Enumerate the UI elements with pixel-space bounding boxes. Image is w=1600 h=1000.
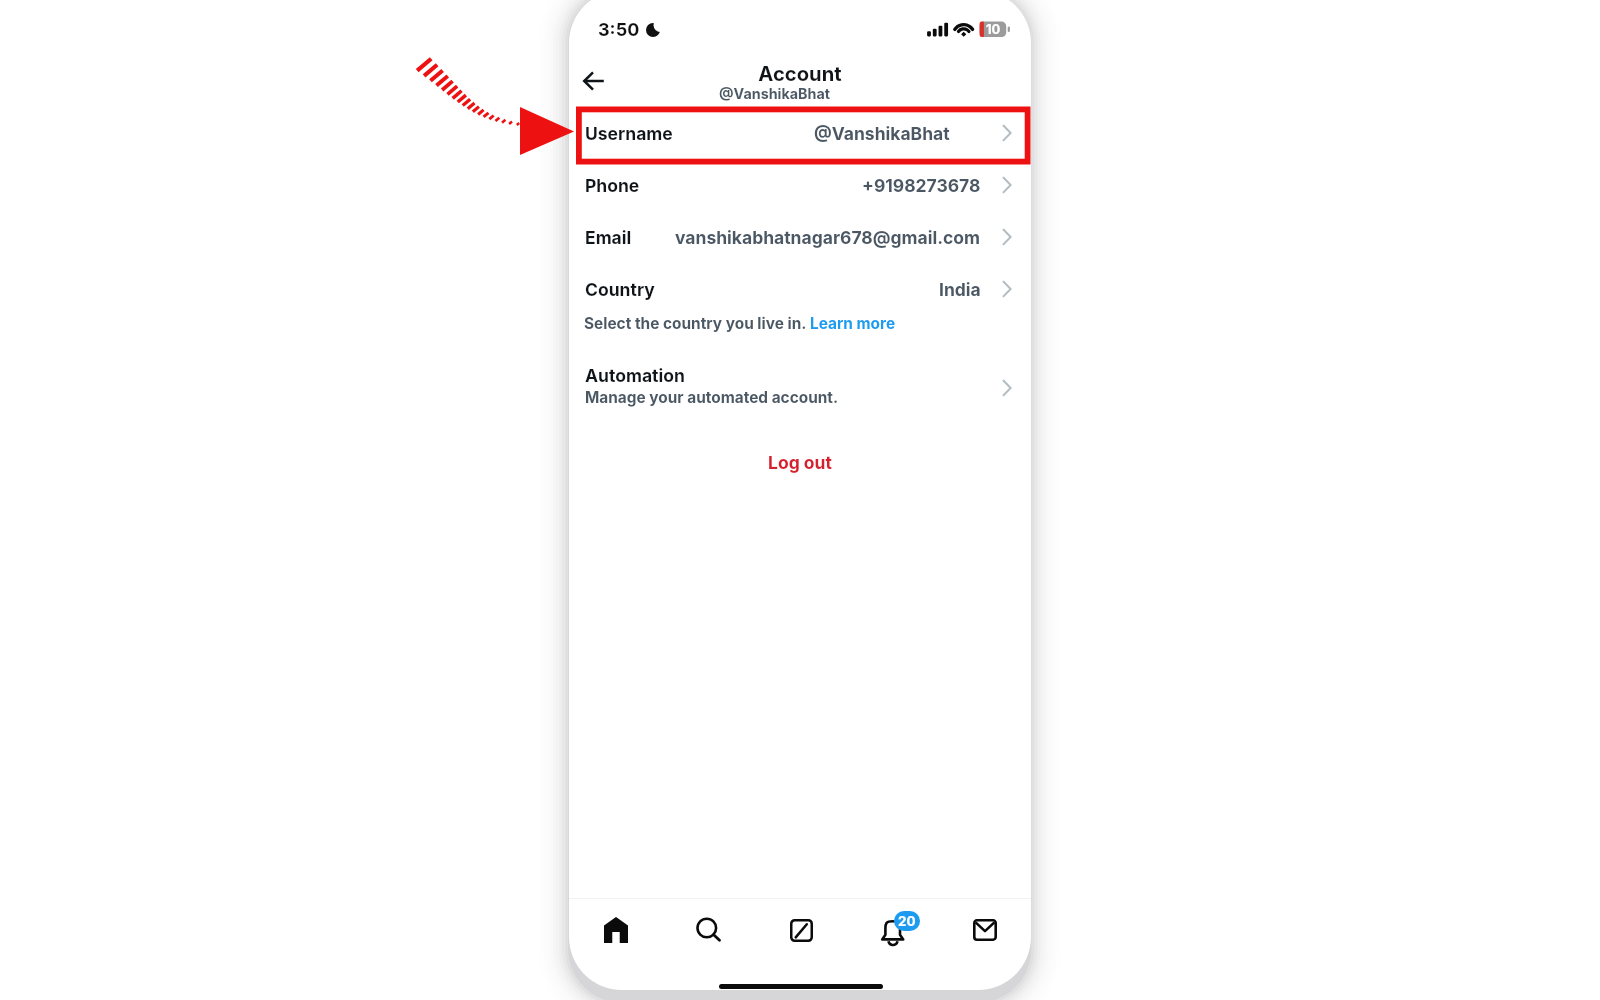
- staticText: 10: [986, 21, 1001, 37]
- staticText: Automation: [585, 365, 685, 386]
- staticText: Username: [585, 123, 673, 144]
- staticText: +9198273678: [862, 175, 981, 196]
- staticText: vanshikabhatnagar678@gmail.com: [675, 227, 981, 248]
- staticText: Account: [758, 61, 842, 85]
- button[interactable]: Email: [569, 211, 1031, 263]
- staticText: Country: [585, 279, 655, 300]
- staticText: 20: [898, 913, 916, 929]
- button[interactable]: Search: [662, 900, 755, 960]
- staticText: Select the country you live in.: [584, 314, 810, 333]
- staticText: @VanshikaBhat: [814, 123, 950, 144]
- staticText: India: [939, 279, 981, 300]
- staticText: Phone: [585, 175, 640, 196]
- button[interactable]: Country: [569, 263, 1031, 315]
- staticText: 3:50: [598, 19, 640, 41]
- button[interactable]: Messages: [939, 900, 1031, 960]
- button[interactable]: Automation: [569, 362, 1031, 414]
- button[interactable]: Back: [574, 61, 614, 101]
- button[interactable]: Log out: [752, 446, 848, 479]
- button[interactable]: Phone: [569, 159, 1031, 211]
- staticText: @VanshikaBhat: [719, 85, 830, 102]
- button[interactable]: Home: [569, 900, 662, 960]
- button[interactable]: Grok: [755, 900, 847, 960]
- button[interactable]: Username: [569, 107, 1031, 159]
- staticText: Manage your automated account.: [585, 388, 839, 407]
- staticText: Log out: [768, 452, 832, 473]
- staticText: Email: [585, 227, 632, 248]
- staticText: Learn more: [810, 314, 896, 333]
- button[interactable]: Notifications: [847, 900, 939, 960]
